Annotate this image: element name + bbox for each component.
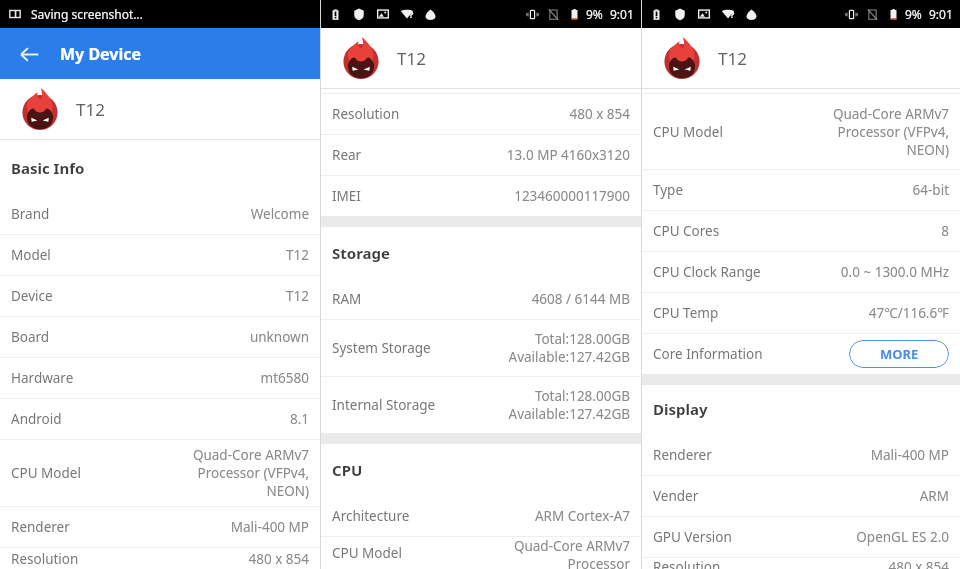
staticText: ARM Cortex-A7 xyxy=(534,507,630,525)
staticText: Model xyxy=(11,246,51,264)
button[interactable]: CPU Temp xyxy=(642,293,960,333)
button[interactable]: Resolution xyxy=(0,548,320,569)
staticText: Quad-Core ARMv7 Processor (VFPv4, NEON) xyxy=(832,105,949,159)
staticText: 8.1 xyxy=(289,410,309,428)
staticText: Display xyxy=(653,399,708,419)
staticText: IMEI xyxy=(332,187,361,205)
staticText: 4608 / 6144 MB xyxy=(531,290,630,308)
staticText: My Device xyxy=(60,43,142,65)
staticText: unknown xyxy=(249,328,309,346)
staticText: OpenGL ES 2.0 xyxy=(856,528,949,546)
staticText: RAM xyxy=(332,290,362,308)
staticText: 64-bit xyxy=(912,181,949,199)
staticText: 480 x 854 xyxy=(569,105,630,123)
staticText: T12 xyxy=(76,98,105,121)
button[interactable]: T12 xyxy=(642,28,960,88)
staticText: 13.0 MP 4160x3120 xyxy=(506,146,630,164)
button[interactable]: Device xyxy=(0,276,320,316)
staticText: GPU Version xyxy=(653,528,732,546)
button[interactable]: System Storage xyxy=(321,320,641,376)
staticText: Device xyxy=(11,287,53,305)
staticText: 8 xyxy=(941,222,949,240)
button[interactable]: Hardware xyxy=(0,358,320,398)
staticText: CPU Cores xyxy=(653,222,720,240)
button[interactable]: RAM xyxy=(321,279,641,319)
staticText: T12 xyxy=(286,287,309,305)
staticText: CPU Model xyxy=(332,544,402,562)
staticText: Saving screenshot… xyxy=(31,6,143,22)
staticText: CPU Model xyxy=(11,464,81,482)
button[interactable]: Android xyxy=(0,399,320,439)
button[interactable]: CPU Model xyxy=(642,94,960,169)
staticText: Hardware xyxy=(11,369,74,387)
button[interactable]: Board xyxy=(0,317,320,357)
button[interactable]: Resolution xyxy=(642,558,960,569)
button[interactable]: IMEI xyxy=(321,176,641,216)
staticText: Basic Info xyxy=(11,158,85,178)
staticText: Brand xyxy=(11,205,50,223)
staticText: Quad-Core ARMv7 Processor xyxy=(513,537,630,569)
staticText: T12 xyxy=(718,47,747,70)
staticText: CPU Clock Range xyxy=(653,263,761,281)
button[interactable]: Internal Storage xyxy=(321,377,641,433)
button[interactable]: Back xyxy=(12,37,46,71)
staticText: 123460000117900 xyxy=(514,187,630,205)
staticText: CPU xyxy=(332,460,363,480)
staticText: ? xyxy=(730,8,735,20)
button[interactable]: CPU Model xyxy=(321,537,641,569)
staticText: Resolution xyxy=(332,105,400,123)
staticText: 480 x 854 xyxy=(248,550,309,568)
button[interactable]: Renderer xyxy=(642,435,960,475)
staticText: Type xyxy=(653,181,684,199)
button[interactable]: Renderer xyxy=(0,507,320,547)
staticText: 9:01 xyxy=(929,6,953,22)
staticText: 9:01 xyxy=(610,6,634,22)
button[interactable]: MORE xyxy=(849,340,949,368)
staticText: Storage xyxy=(332,243,390,263)
staticText: Welcome xyxy=(250,205,309,223)
staticText: Mali-400 MP xyxy=(230,518,309,536)
button[interactable]: T12 xyxy=(0,79,320,139)
staticText: 9% xyxy=(586,6,603,22)
staticText: T12 xyxy=(397,47,426,70)
staticText: Renderer xyxy=(11,518,70,536)
button[interactable]: Model xyxy=(0,235,320,275)
staticText: Core Information xyxy=(653,345,763,363)
staticText: Vender xyxy=(653,487,699,505)
staticText: Board xyxy=(11,328,50,346)
staticText: MORE xyxy=(880,345,919,363)
button[interactable]: CPU Cores xyxy=(642,211,960,251)
button[interactable]: Vender xyxy=(642,476,960,516)
staticText: CPU Temp xyxy=(653,304,719,322)
staticText: CPU Model xyxy=(653,123,723,141)
staticText: Android xyxy=(11,410,62,428)
staticText: Resolution xyxy=(653,558,721,569)
button[interactable]: Resolution xyxy=(321,94,641,134)
staticText: Total:128.00GB Available:127.42GB xyxy=(508,387,630,423)
staticText: Internal Storage xyxy=(332,396,436,414)
button[interactable]: Architecture xyxy=(321,496,641,536)
staticText: System Storage xyxy=(332,339,431,357)
staticText: Renderer xyxy=(653,446,712,464)
staticText: 480 x 854 xyxy=(888,558,949,569)
staticText: Mali-400 MP xyxy=(870,446,949,464)
staticText: 47℃/116.6℉ xyxy=(868,304,949,322)
button[interactable]: GPU Version xyxy=(642,517,960,557)
button[interactable]: CPU Clock Range xyxy=(642,252,960,292)
staticText: Rear xyxy=(332,146,362,164)
button[interactable]: Rear xyxy=(321,135,641,175)
staticText: Resolution xyxy=(11,550,79,568)
staticText: Quad-Core ARMv7 Processor (VFPv4, NEON) xyxy=(192,446,309,500)
button[interactable]: Type xyxy=(642,170,960,210)
staticText: ARM xyxy=(919,487,949,505)
staticText: Architecture xyxy=(332,507,410,525)
staticText: 9% xyxy=(905,6,922,22)
button[interactable]: CPU Model xyxy=(0,440,320,506)
staticText: ? xyxy=(409,8,414,20)
button[interactable]: T12 xyxy=(321,28,641,88)
staticText: 0.0 ~ 1300.0 MHz xyxy=(840,263,949,281)
staticText: Total:128.00GB Available:127.42GB xyxy=(508,330,630,366)
staticText: T12 xyxy=(286,246,309,264)
button[interactable]: Brand xyxy=(0,194,320,234)
staticText: mt6580 xyxy=(260,369,309,387)
